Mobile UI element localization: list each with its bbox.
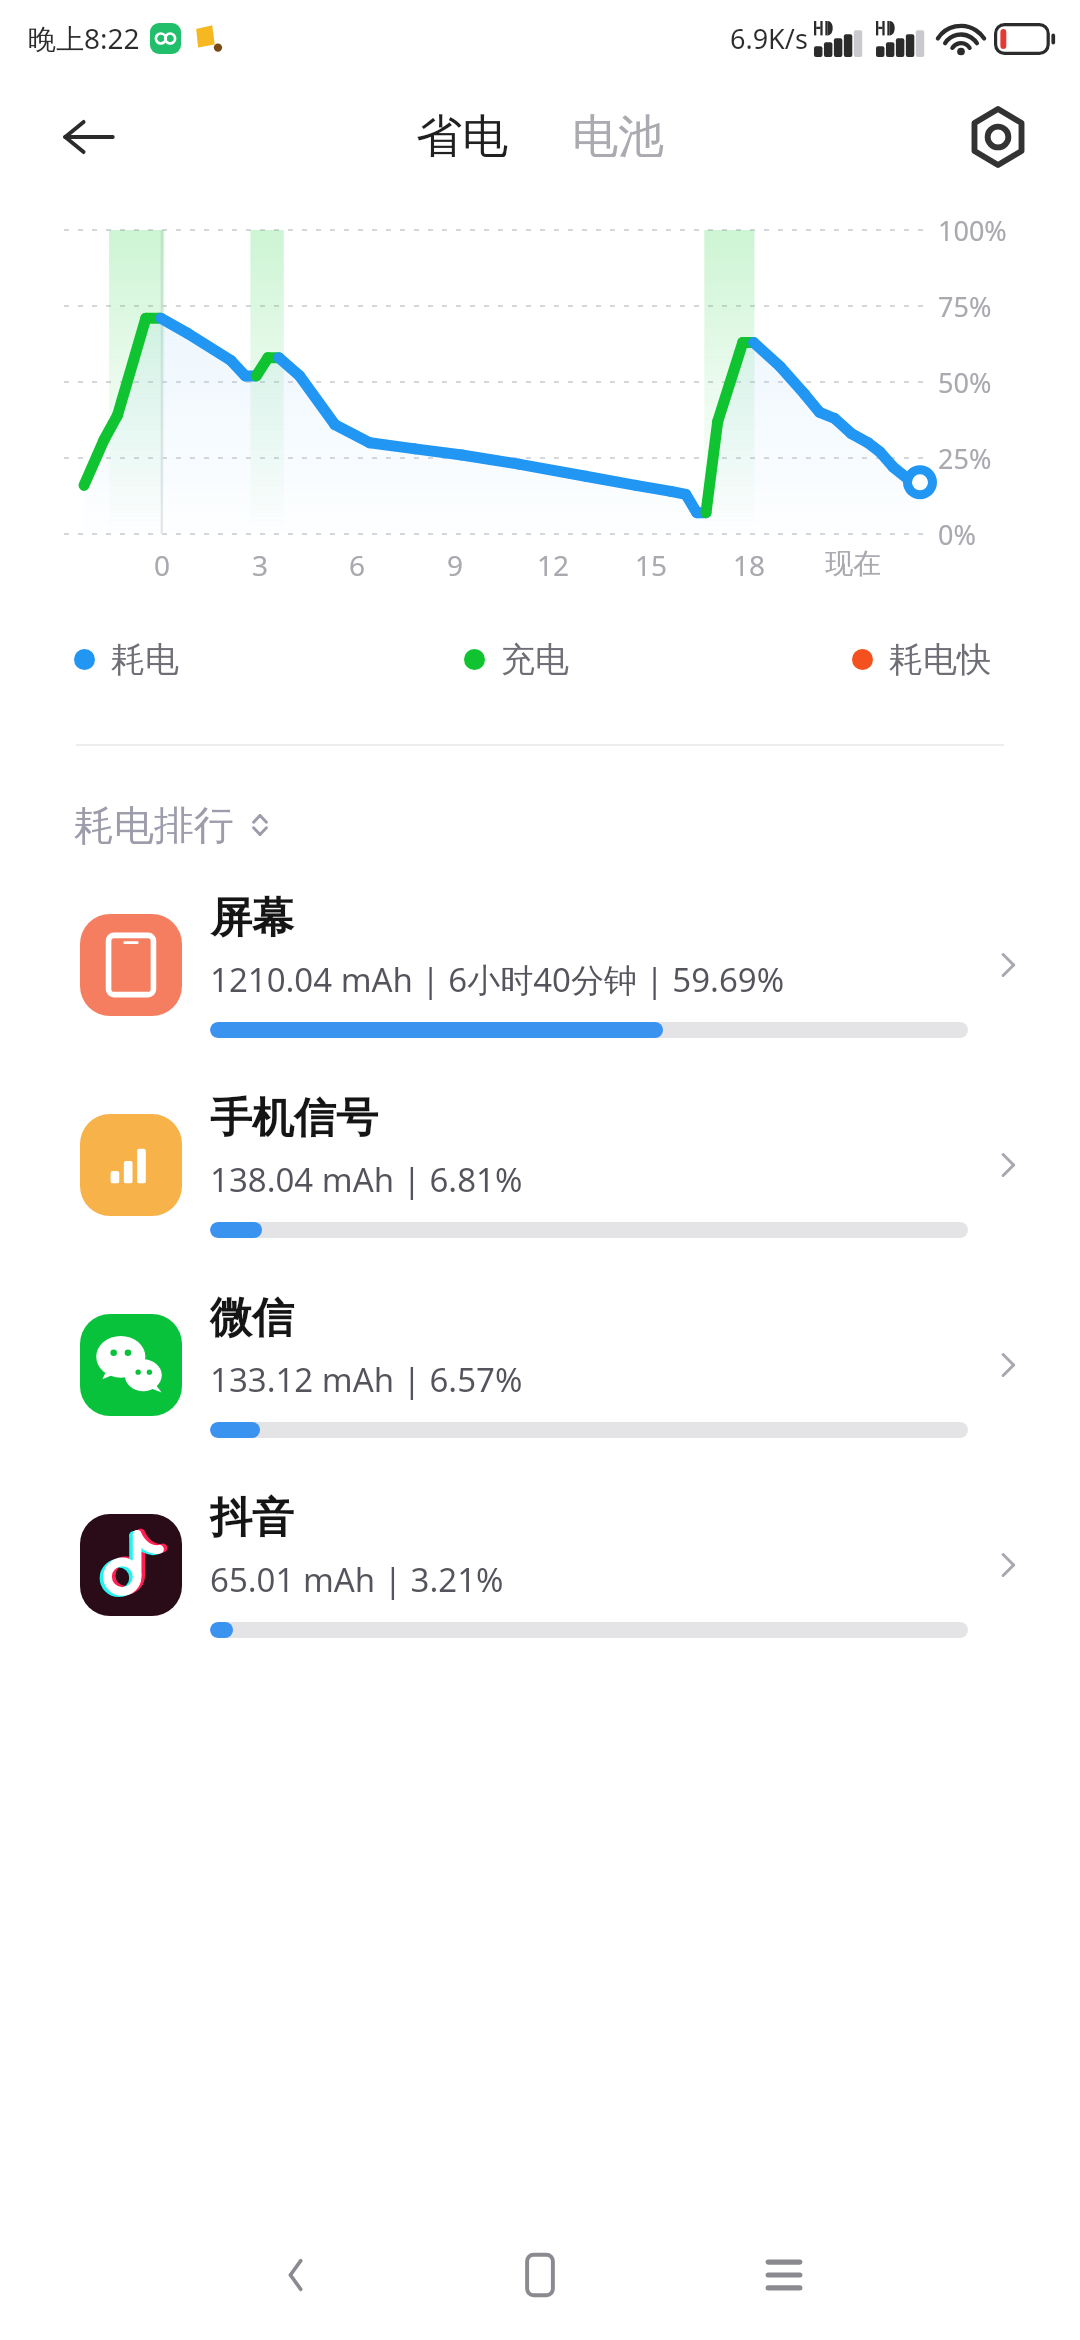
button[interactable]: 设置	[958, 97, 1038, 177]
staticText: 12	[523, 546, 583, 584]
staticText: 0%	[938, 516, 976, 553]
button[interactable]: 耗电排行	[74, 800, 274, 850]
staticText: 微信	[210, 1292, 294, 1345]
staticText: 电池	[572, 108, 664, 166]
staticText: 50%	[938, 364, 992, 401]
button[interactable]: 返回	[250, 2229, 342, 2321]
staticText: 现在	[823, 546, 883, 581]
button[interactable]: 微信	[0, 1292, 1080, 1438]
staticText: 133.12 mAh | 6.57%	[210, 1357, 523, 1402]
staticText: 抖音	[210, 1492, 294, 1545]
staticText: 65.01 mAh | 3.21%	[210, 1557, 504, 1602]
staticText: 75%	[938, 288, 992, 325]
staticText: 100%	[938, 212, 1007, 249]
button[interactable]: 电池	[560, 98, 676, 176]
staticText: 耗电快	[889, 638, 991, 681]
staticText: 充电	[501, 638, 569, 681]
button[interactable]: 手机信号	[0, 1092, 1080, 1238]
button[interactable]: 主屏幕	[494, 2229, 586, 2321]
staticText: 9	[425, 546, 485, 584]
staticText: 15	[621, 546, 681, 584]
staticText: 138.04 mAh | 6.81%	[210, 1157, 523, 1202]
staticText: 3	[230, 546, 290, 584]
staticText: 18	[719, 546, 779, 584]
button[interactable]: 省电	[404, 98, 520, 176]
staticText: 6	[327, 546, 387, 584]
staticText: 手机信号	[210, 1092, 378, 1145]
staticText: 省电	[416, 108, 508, 166]
button[interactable]: 屏幕	[0, 892, 1080, 1038]
button[interactable]: 抖音	[0, 1492, 1080, 1638]
staticText: 耗电	[111, 638, 179, 681]
button[interactable]: 返回	[50, 98, 128, 176]
staticText: 6.9K/s	[730, 20, 808, 57]
button[interactable]: 最近任务	[738, 2229, 830, 2321]
staticText: 耗电排行	[74, 800, 234, 850]
staticText: 屏幕	[210, 892, 294, 945]
staticText: 0	[132, 546, 192, 584]
staticText: 1210.04 mAh | 6小时40分钟 | 59.69%	[210, 957, 785, 1002]
staticText: 晚上8:22	[28, 19, 140, 57]
staticText: 25%	[938, 440, 992, 477]
